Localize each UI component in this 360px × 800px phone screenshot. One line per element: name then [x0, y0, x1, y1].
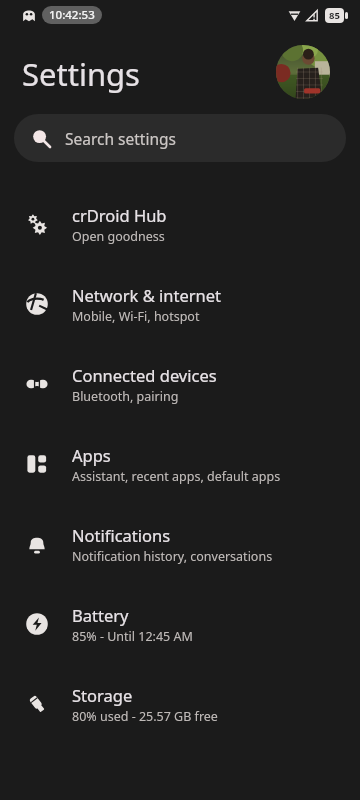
- button[interactable]: Network & internet: [0, 264, 360, 344]
- button[interactable]: Apps: [0, 424, 360, 504]
- staticText: Battery: [72, 604, 129, 626]
- staticText: 85% - Until 12:45 AM: [72, 628, 193, 645]
- button[interactable]: Connected devices: [0, 344, 360, 424]
- staticText: Notifications: [72, 524, 171, 546]
- staticText: Network & internet: [72, 284, 222, 306]
- staticText: crDroid Hub: [72, 204, 167, 226]
- staticText: Assistant, recent apps, default apps: [72, 468, 281, 485]
- staticText: Notification history, conversations: [72, 548, 273, 565]
- button[interactable]: Search settings: [14, 114, 346, 162]
- button[interactable]: Battery: [0, 584, 360, 664]
- button[interactable]: Account avatar: [276, 45, 330, 99]
- staticText: Settings: [22, 53, 140, 95]
- staticText: 10:42:53: [49, 7, 95, 23]
- staticText: Open goodness: [72, 228, 165, 245]
- staticText: Bluetooth, pairing: [72, 388, 179, 405]
- staticText: Apps: [72, 444, 111, 466]
- staticText: 80% used - 25.57 GB free: [72, 708, 218, 725]
- button[interactable]: Storage: [0, 664, 360, 744]
- button[interactable]: Notifications: [0, 504, 360, 584]
- staticText: Connected devices: [72, 364, 217, 386]
- button[interactable]: crDroid Hub: [0, 184, 360, 264]
- staticText: Mobile, Wi-Fi, hotspot: [72, 308, 200, 325]
- staticText: Storage: [72, 684, 133, 706]
- staticText: Search settings: [65, 128, 176, 149]
- staticText: 85: [329, 9, 340, 22]
